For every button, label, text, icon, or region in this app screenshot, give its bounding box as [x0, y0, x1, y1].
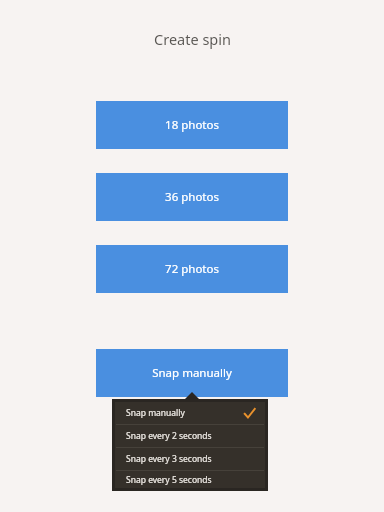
staticText: 36 photos: [165, 189, 219, 205]
button[interactable]: Snap manually: [96, 349, 288, 397]
staticText: Snap every 2 seconds: [126, 430, 212, 442]
staticText: Snap every 5 seconds: [126, 474, 212, 486]
staticText: 18 photos: [165, 117, 219, 133]
staticText: Snap manually: [152, 365, 232, 381]
button[interactable]: Snap every 2 seconds: [115, 425, 265, 447]
staticText: 72 photos: [165, 261, 219, 277]
button[interactable]: 36 photos: [96, 173, 288, 221]
other: Selected: [244, 408, 255, 419]
button[interactable]: Snap every 3 seconds: [115, 448, 265, 470]
staticText: Snap every 3 seconds: [126, 453, 212, 465]
button[interactable]: Snap every 5 seconds: [115, 471, 265, 488]
staticText: Snap manually: [126, 407, 185, 419]
button[interactable]: Snap manually: [115, 402, 265, 424]
button[interactable]: 18 photos: [96, 101, 288, 149]
button[interactable]: 72 photos: [96, 245, 288, 293]
staticText: Create spin: [154, 29, 231, 49]
